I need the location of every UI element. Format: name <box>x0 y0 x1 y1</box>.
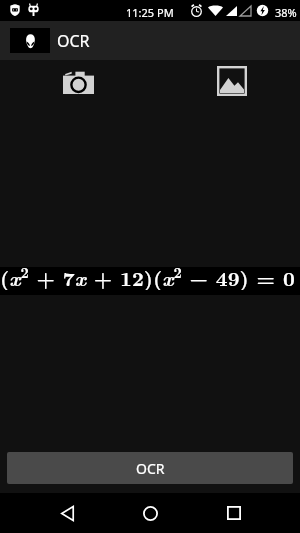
button[interactable]: Take photo <box>63 70 94 94</box>
button[interactable]: Back <box>51 497 83 529</box>
button[interactable]: Home <box>134 497 166 529</box>
staticText: 38% <box>275 5 297 20</box>
staticText: (x2 + 7x + 12)(x2 − 49) = 0 <box>0 262 295 290</box>
button[interactable]: Pick image from gallery <box>216 65 248 97</box>
staticText: 11:25 PM <box>126 5 174 20</box>
button[interactable]: App logo <box>10 28 50 53</box>
staticText: OCR <box>57 30 90 52</box>
staticText: OCR <box>136 459 165 478</box>
button[interactable]: OCR <box>7 452 293 484</box>
button[interactable]: Recent apps <box>218 497 250 529</box>
